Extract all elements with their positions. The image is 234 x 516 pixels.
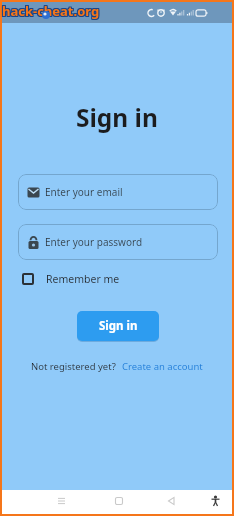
button[interactable]: Enter your password — [18, 224, 218, 260]
staticText: Enter your password — [45, 235, 143, 249]
button[interactable]: Create an account — [122, 360, 203, 373]
staticText: hack-cheat.org — [3, 3, 101, 21]
button[interactable]: Remember me — [22, 272, 120, 286]
staticText: hack-cheat.org — [2, 2, 100, 20]
button[interactable]: Sign in — [77, 311, 159, 341]
staticText: hack-cheat.org — [3, 2, 101, 20]
staticText: Enter your email — [45, 185, 123, 199]
staticText: Sign in — [76, 101, 158, 134]
staticText: Sign in — [99, 318, 138, 334]
staticText: hack-cheat.org — [1, 1, 99, 19]
staticText: Remember me — [46, 272, 120, 286]
staticText: hack-cheat.org — [2, 1, 100, 19]
button[interactable]: Enter your email — [18, 174, 218, 210]
staticText: Not registered yet? — [31, 360, 116, 373]
staticText: hack-cheat.org — [2, 3, 100, 21]
staticText: hack-cheat.org — [1, 3, 99, 21]
staticText: hack-cheat.org — [3, 1, 101, 19]
staticText: hack-cheat.org — [1, 2, 99, 20]
